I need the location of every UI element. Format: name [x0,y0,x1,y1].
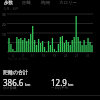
staticText: km [25,82,31,87]
staticText: 10 [2,33,6,37]
staticText: 7 [22,54,24,58]
staticText: 20 [2,23,6,27]
staticText: カロリー [59,0,77,6]
staticText: 合計距離 [3,86,17,90]
button[interactable]: カロリー [59,0,77,6]
button[interactable]: 距離 [22,0,31,6]
staticText: 27 [75,54,79,58]
staticText: 31 [86,54,90,58]
staticText: 一日の平均 [51,86,69,90]
staticText: 時間 [41,0,50,6]
staticText: 5月 - 6月 [4,6,19,11]
staticText: 30 [2,13,6,17]
button[interactable]: 歩数 [4,0,13,6]
staticText: 歩数 [4,0,13,6]
staticText: 11 [31,54,35,58]
button[interactable]: 時間 [41,0,50,6]
staticText: 19 [53,54,57,58]
staticText: 386.6 [3,77,24,88]
staticText: 5月3日-6月5日 [8,57,28,61]
staticText: 3 [12,54,14,58]
staticText: 23 [64,54,68,58]
staticText: 15 [42,54,46,58]
staticText: 距離の合計 [3,69,29,75]
button[interactable]: 5月 - 6月 [4,6,19,11]
staticText: 12.9 [51,77,67,88]
staticText: 距離 [22,0,31,6]
staticText: km [68,82,74,87]
